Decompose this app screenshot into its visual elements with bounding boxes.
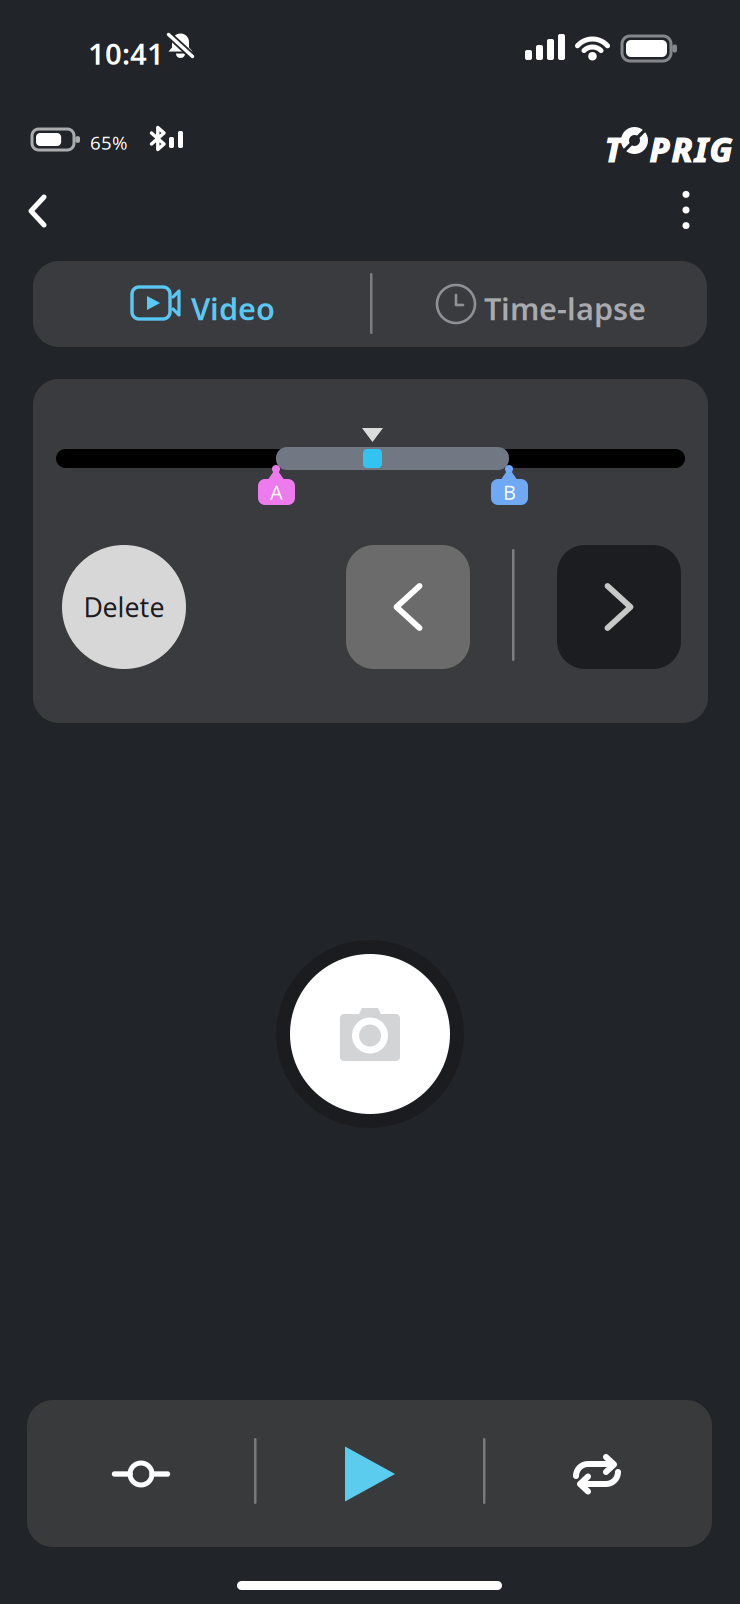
- staticText: 65%: [90, 130, 128, 155]
- button[interactable]: Play: [280, 1419, 460, 1529]
- staticText: T: [604, 126, 623, 172]
- staticText: Delete: [83, 589, 164, 625]
- button[interactable]: Delete: [62, 545, 186, 669]
- button[interactable]: Back: [1, 176, 75, 246]
- button[interactable]: Repeat: [522, 1419, 672, 1529]
- button[interactable]: Capture: [276, 940, 464, 1128]
- staticText: A: [270, 479, 283, 505]
- staticText: 10:41: [88, 34, 164, 73]
- button[interactable]: Marker B: [491, 465, 527, 505]
- button[interactable]: Video: [33, 261, 371, 347]
- staticText: PRIG: [649, 126, 733, 172]
- button[interactable]: Adjust: [66, 1419, 216, 1529]
- staticText: Video: [191, 288, 275, 329]
- button[interactable]: Time-lapse: [33, 261, 369, 347]
- button[interactable]: Next: [557, 545, 681, 669]
- button[interactable]: More options: [648, 175, 724, 245]
- button[interactable]: Previous: [346, 545, 470, 669]
- button[interactable]: Marker A: [258, 465, 294, 505]
- staticText: B: [503, 479, 516, 505]
- staticText: Time-lapse: [484, 288, 646, 329]
